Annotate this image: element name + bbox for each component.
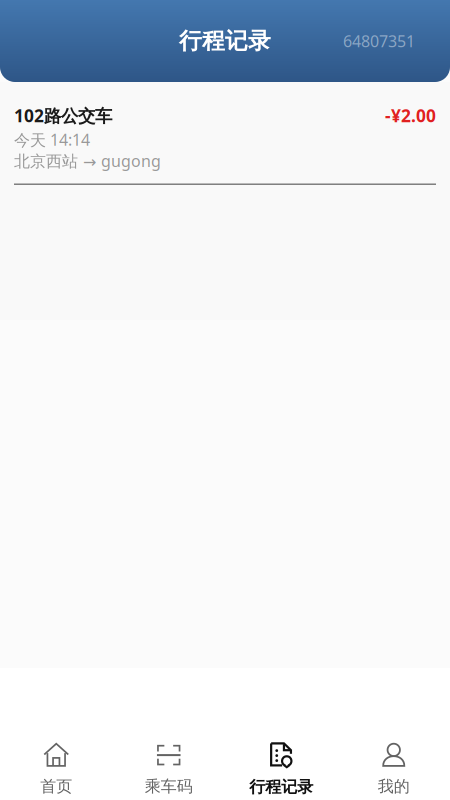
staticText: 乘车码	[145, 776, 193, 796]
staticText: 今天 14:14	[14, 129, 90, 150]
staticText: 我的	[378, 776, 410, 796]
staticText: 行程记录	[179, 27, 271, 55]
button[interactable]: 我的	[337, 742, 450, 796]
button[interactable]: 首页	[0, 742, 112, 796]
staticText: -¥2.00	[385, 104, 436, 127]
staticText: 64807351	[343, 30, 415, 52]
staticText: 首页	[40, 776, 72, 796]
button[interactable]: 102路公交车	[0, 82, 450, 185]
staticText: 102路公交车	[14, 104, 112, 127]
staticText: 行程记录	[249, 777, 313, 797]
button[interactable]: 行程记录	[225, 742, 337, 797]
button[interactable]: 乘车码	[112, 742, 225, 796]
staticText: 北京西站 → gugong	[14, 150, 161, 171]
